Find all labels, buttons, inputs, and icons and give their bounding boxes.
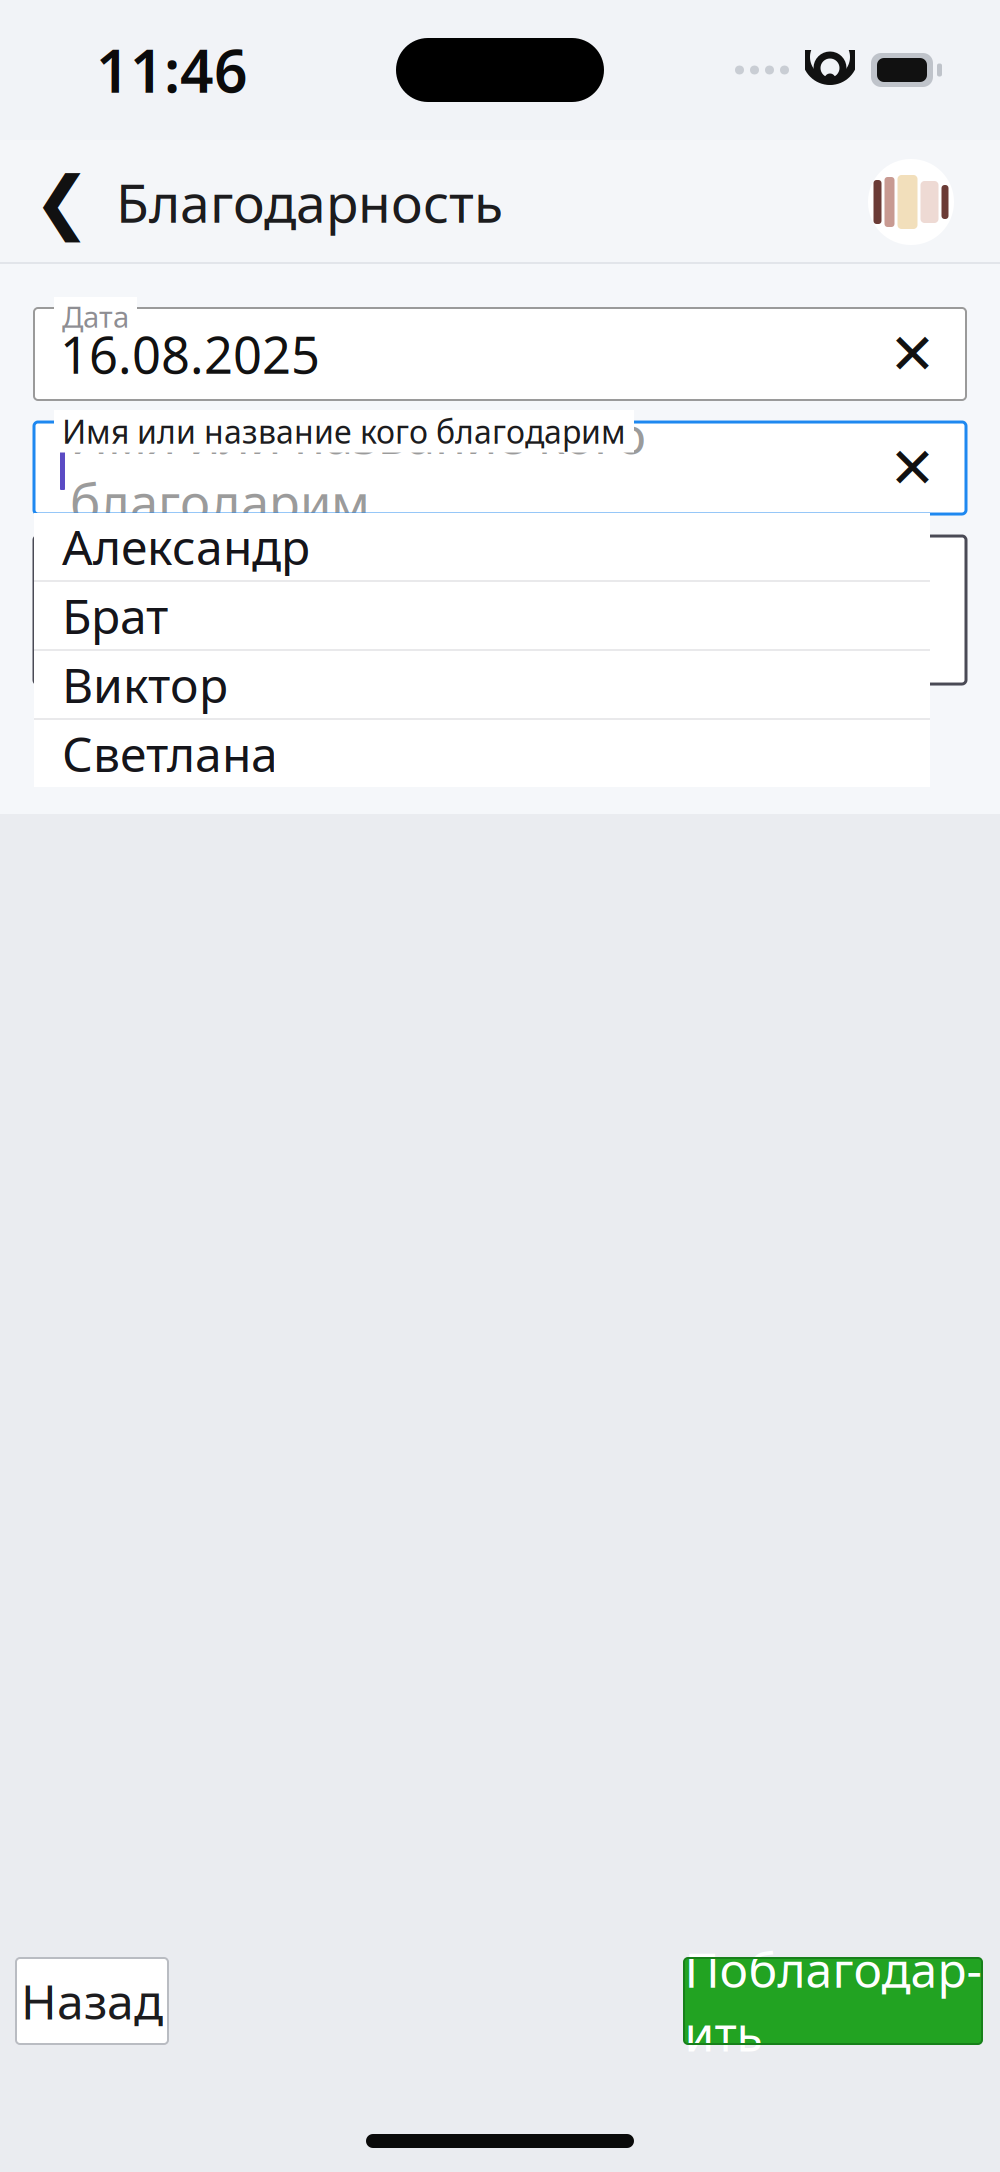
staticText: Александр bbox=[62, 515, 310, 578]
staticText: 16.08.2025 bbox=[60, 320, 320, 388]
staticText: Назад bbox=[21, 1969, 163, 2033]
staticText: ✕ bbox=[889, 436, 936, 500]
staticText: 11:46 bbox=[96, 31, 248, 109]
button[interactable]: Брат bbox=[34, 582, 930, 651]
button[interactable]: Виктор bbox=[34, 651, 930, 720]
button[interactable]: Имя или название кого благодарим bbox=[34, 422, 966, 514]
button[interactable]: Назад bbox=[16, 154, 108, 250]
staticText: Благодарность bbox=[116, 167, 503, 237]
staticText: Брат bbox=[62, 584, 168, 647]
staticText: ❮ bbox=[33, 163, 91, 241]
staticText: Имя или название кого благодарим bbox=[62, 410, 626, 452]
button[interactable]: Комментарий bbox=[34, 536, 966, 684]
button[interactable]: Логотип приложения bbox=[868, 159, 954, 245]
button[interactable]: Светлана bbox=[34, 720, 930, 787]
staticText: Поблагодарить bbox=[684, 1937, 981, 2065]
staticText: Виктор bbox=[62, 653, 228, 716]
staticText: Светлана bbox=[62, 722, 278, 785]
staticText: Имя или название кого благодарим bbox=[70, 401, 646, 535]
staticText: ✕ bbox=[891, 593, 936, 653]
staticText: Дата bbox=[62, 297, 129, 336]
button[interactable]: 16.08.2025 bbox=[34, 308, 966, 400]
button[interactable]: Александр bbox=[34, 513, 930, 582]
staticText: ✕ bbox=[889, 322, 936, 386]
button[interactable]: Назад bbox=[16, 1958, 168, 2044]
button[interactable]: Поблагодарить bbox=[684, 1958, 982, 2044]
